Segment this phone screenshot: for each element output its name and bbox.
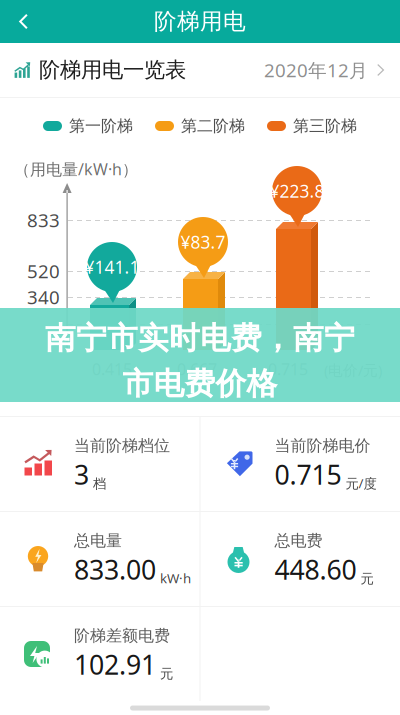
- staticText: 第二阶梯: [181, 116, 245, 136]
- staticText: 阶梯用电: [154, 8, 246, 35]
- staticText: 元: [360, 571, 373, 587]
- staticText: 市电费价格: [122, 365, 277, 403]
- staticText: 833: [27, 208, 60, 232]
- staticText: 520: [27, 259, 60, 283]
- staticText: 元/度: [345, 474, 376, 492]
- button[interactable]: 阶梯差额电费: [0, 607, 199, 701]
- staticText: 102.91: [74, 647, 156, 682]
- staticText: 当前阶梯电价: [274, 436, 370, 456]
- button[interactable]: 当前阶梯档位: [0, 417, 199, 511]
- staticText: 第三阶梯: [293, 116, 357, 136]
- staticText: 3: [74, 457, 89, 492]
- staticText: 448.60: [274, 552, 356, 587]
- button[interactable]: 当前阶梯电价: [200, 417, 400, 511]
- staticText: 833.00: [74, 552, 156, 587]
- staticText: ¥83.7: [180, 230, 225, 253]
- staticText: 当前阶梯档位: [74, 436, 170, 456]
- staticText: （用电量/kW·h）: [14, 158, 138, 180]
- staticText: 2020年12月: [264, 58, 368, 82]
- staticText: 0.667: [177, 358, 217, 380]
- staticText: 0.415: [92, 358, 132, 380]
- staticText: 档: [93, 476, 106, 492]
- staticText: 阶梯用电一览表: [39, 57, 186, 83]
- staticText: 0.715: [274, 457, 341, 492]
- staticText: 第一阶梯: [69, 116, 133, 136]
- staticText: 阶梯差额电费: [74, 626, 170, 646]
- button[interactable]: 总电费: [200, 512, 400, 606]
- staticText: 总电量: [74, 531, 122, 551]
- staticText: 340: [27, 285, 60, 309]
- staticText: kW·h: [160, 569, 191, 587]
- staticText: ¥223.8: [269, 179, 324, 202]
- button[interactable]: 阶梯用电一览表: [0, 43, 400, 97]
- staticText: 0.715: [268, 358, 308, 380]
- button[interactable]: Back: [0, 0, 46, 43]
- staticText: 总电费: [274, 531, 322, 551]
- staticText: ¥141.1: [84, 255, 139, 278]
- staticText: 元: [160, 666, 173, 682]
- staticText: 南宁市实时电费，南宁: [45, 319, 355, 357]
- button[interactable]: 总电量: [0, 512, 199, 606]
